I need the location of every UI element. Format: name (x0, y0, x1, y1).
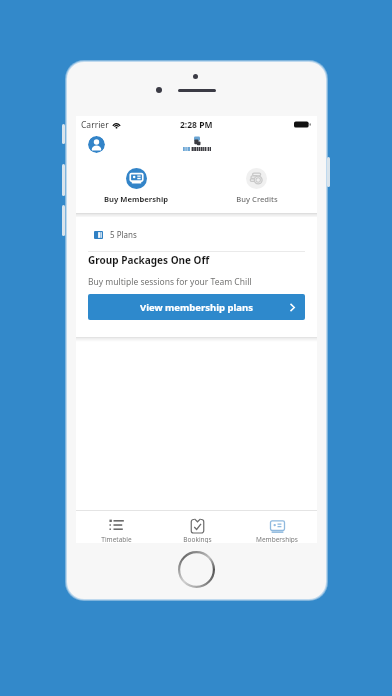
button[interactable]: Bookings (157, 511, 237, 543)
staticText: Buy multiple sessions for your Team Chil… (88, 276, 252, 288)
staticText: Buy Credits (236, 194, 278, 204)
button[interactable]: Buy Credits (196, 167, 317, 212)
button[interactable]: Timetable (76, 511, 157, 543)
staticText: View membership plans (140, 301, 253, 314)
button[interactable]: Buy Membership (76, 167, 196, 212)
button[interactable]: Memberships (237, 511, 317, 543)
staticText: Buy Membership (104, 194, 168, 204)
staticText: Group Packages One Off (88, 253, 210, 267)
staticText: Bookings (183, 535, 212, 543)
staticText: Carrier (81, 119, 109, 131)
button[interactable]: View membership plans (88, 294, 305, 320)
button[interactable]: Profile (88, 136, 105, 153)
staticText: Memberships (256, 535, 298, 543)
staticText: 5 Plans (110, 229, 137, 240)
staticText: Timetable (101, 535, 132, 543)
staticText: 2:28 PM (180, 119, 213, 131)
